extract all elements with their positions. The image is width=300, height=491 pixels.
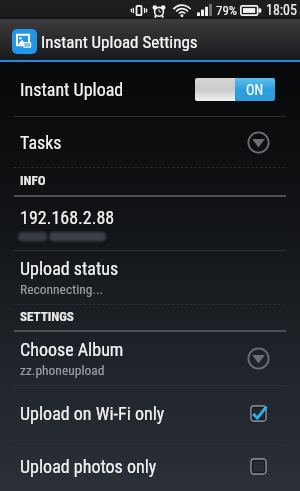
staticText: Reconnecting... (20, 281, 104, 297)
staticText: Choose Album (20, 339, 124, 360)
button[interactable]: Upload photos only (0, 441, 300, 491)
staticText: 79% (216, 3, 238, 18)
staticText: Upload photos only (20, 456, 157, 477)
staticText: INFO (20, 173, 46, 188)
button[interactable]: Instant Upload Settings (0, 19, 300, 60)
staticText: SETTINGS (20, 309, 74, 324)
staticText: 18:05 (266, 2, 297, 18)
staticText: Instant Upload Settings (41, 32, 198, 52)
button[interactable]: 192.168.2.88 (0, 197, 300, 250)
button[interactable]: Choose Album (0, 332, 300, 385)
staticText: Tasks (20, 132, 62, 153)
button[interactable]: Upload status (0, 251, 300, 304)
staticText: 192.168.2.88 (20, 207, 115, 228)
staticText: zz.phoneupload (20, 362, 105, 378)
other: Choose album (247, 347, 270, 370)
other: Show tasks (247, 131, 270, 154)
button[interactable]: Tasks (0, 117, 300, 167)
staticText: Upload on Wi-Fi only (20, 403, 165, 424)
button[interactable]: Upload on Wi-Fi only (0, 386, 300, 440)
staticText: ON (246, 82, 264, 98)
button[interactable]: Instant Upload (0, 62, 300, 116)
staticText: Instant Upload (20, 79, 124, 100)
staticText: Upload status (20, 258, 119, 279)
button[interactable]: ON (195, 78, 275, 101)
